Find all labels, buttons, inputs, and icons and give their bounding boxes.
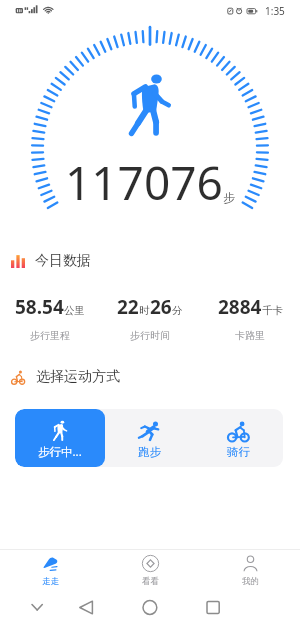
staticText: 26 bbox=[150, 294, 172, 320]
staticText: 看看 bbox=[142, 576, 159, 587]
staticText: 公里 bbox=[64, 304, 85, 317]
button[interactable]: 步行中... bbox=[15, 409, 105, 467]
staticText: 步 bbox=[223, 190, 235, 205]
button[interactable]: 骑行 bbox=[194, 409, 283, 467]
staticText: 22 bbox=[117, 294, 139, 320]
staticText: 卡路里 bbox=[235, 329, 265, 342]
staticText: 我的 bbox=[242, 576, 259, 587]
staticText: 58.54 bbox=[15, 294, 64, 320]
staticText: 千卡 bbox=[262, 304, 283, 317]
staticText: 时 bbox=[139, 304, 150, 317]
staticText: 步行时间 bbox=[130, 329, 170, 342]
staticText: 分 bbox=[172, 304, 183, 317]
button[interactable]: 跑步 bbox=[105, 409, 194, 467]
staticText: 骑行 bbox=[227, 445, 250, 459]
staticText: 2884 bbox=[218, 294, 262, 320]
staticText: 步行里程 bbox=[30, 329, 70, 342]
button[interactable]: Walk tab bbox=[0, 550, 100, 592]
staticText: 1:35 bbox=[265, 4, 285, 18]
other: System navigation bbox=[0, 592, 300, 623]
staticText: 走走 bbox=[42, 576, 59, 587]
staticText: 跑步 bbox=[138, 445, 161, 459]
button[interactable]: Profile tab bbox=[200, 550, 300, 592]
staticText: 步行中... bbox=[38, 444, 82, 460]
staticText: 117076 bbox=[65, 151, 223, 214]
button[interactable]: Discover tab bbox=[100, 550, 200, 592]
staticText: 选择运动方式 bbox=[36, 368, 120, 386]
staticText: 今日数据 bbox=[35, 252, 91, 270]
